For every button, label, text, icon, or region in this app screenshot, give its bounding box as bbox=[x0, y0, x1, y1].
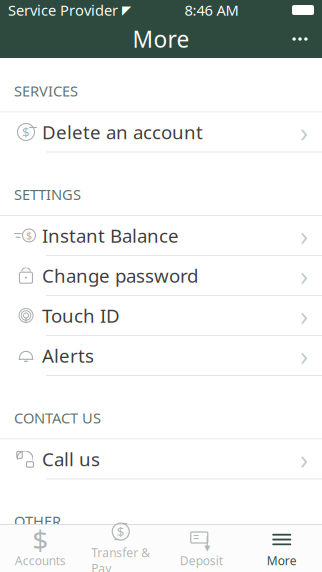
staticText: ▾ bbox=[204, 541, 210, 554]
staticText: › bbox=[300, 218, 308, 253]
staticText: › bbox=[300, 298, 308, 333]
staticText: Delete an account bbox=[42, 120, 203, 144]
staticText: $ bbox=[26, 228, 32, 243]
button[interactable]: $ bbox=[80, 525, 161, 572]
button[interactable]: Touch ID bbox=[0, 296, 322, 335]
button[interactable]: Call us bbox=[0, 439, 322, 478]
button[interactable]: More options bbox=[278, 20, 322, 58]
staticText: More bbox=[267, 552, 297, 568]
staticText: › bbox=[300, 441, 308, 477]
button[interactable]: ▾ bbox=[161, 525, 241, 572]
staticText: Service Provider bbox=[8, 0, 118, 20]
staticText: $ bbox=[117, 523, 125, 540]
staticText: Deposit bbox=[180, 552, 223, 568]
staticText: SETTINGS bbox=[14, 184, 81, 204]
staticText: Alerts bbox=[42, 343, 94, 368]
staticText: SERVICES bbox=[14, 81, 78, 100]
staticText: Transfer & Pay bbox=[91, 545, 150, 572]
staticText: $ bbox=[32, 521, 48, 558]
staticText: CONTACT US bbox=[14, 408, 101, 427]
staticText: › bbox=[300, 114, 308, 150]
staticText: Touch ID bbox=[42, 303, 120, 328]
staticText: ◤ bbox=[122, 3, 131, 17]
button[interactable]: Alerts bbox=[0, 336, 322, 375]
button[interactable]: More bbox=[241, 525, 322, 572]
staticText: › bbox=[300, 258, 308, 293]
staticText: Change password bbox=[42, 263, 198, 288]
staticText: Call us bbox=[42, 446, 100, 471]
staticText: $ bbox=[22, 123, 30, 141]
button[interactable]: $ bbox=[0, 525, 80, 572]
button[interactable]: $ bbox=[0, 216, 322, 255]
staticText: More bbox=[132, 24, 189, 54]
staticText: Accounts bbox=[15, 552, 66, 568]
button[interactable]: $ bbox=[0, 112, 322, 151]
button[interactable]: Change password bbox=[0, 256, 322, 295]
staticText: › bbox=[300, 338, 308, 373]
staticText: 8:46 AM bbox=[184, 0, 238, 20]
staticText: Instant Balance bbox=[42, 223, 179, 248]
staticText: OTHER bbox=[14, 511, 61, 531]
